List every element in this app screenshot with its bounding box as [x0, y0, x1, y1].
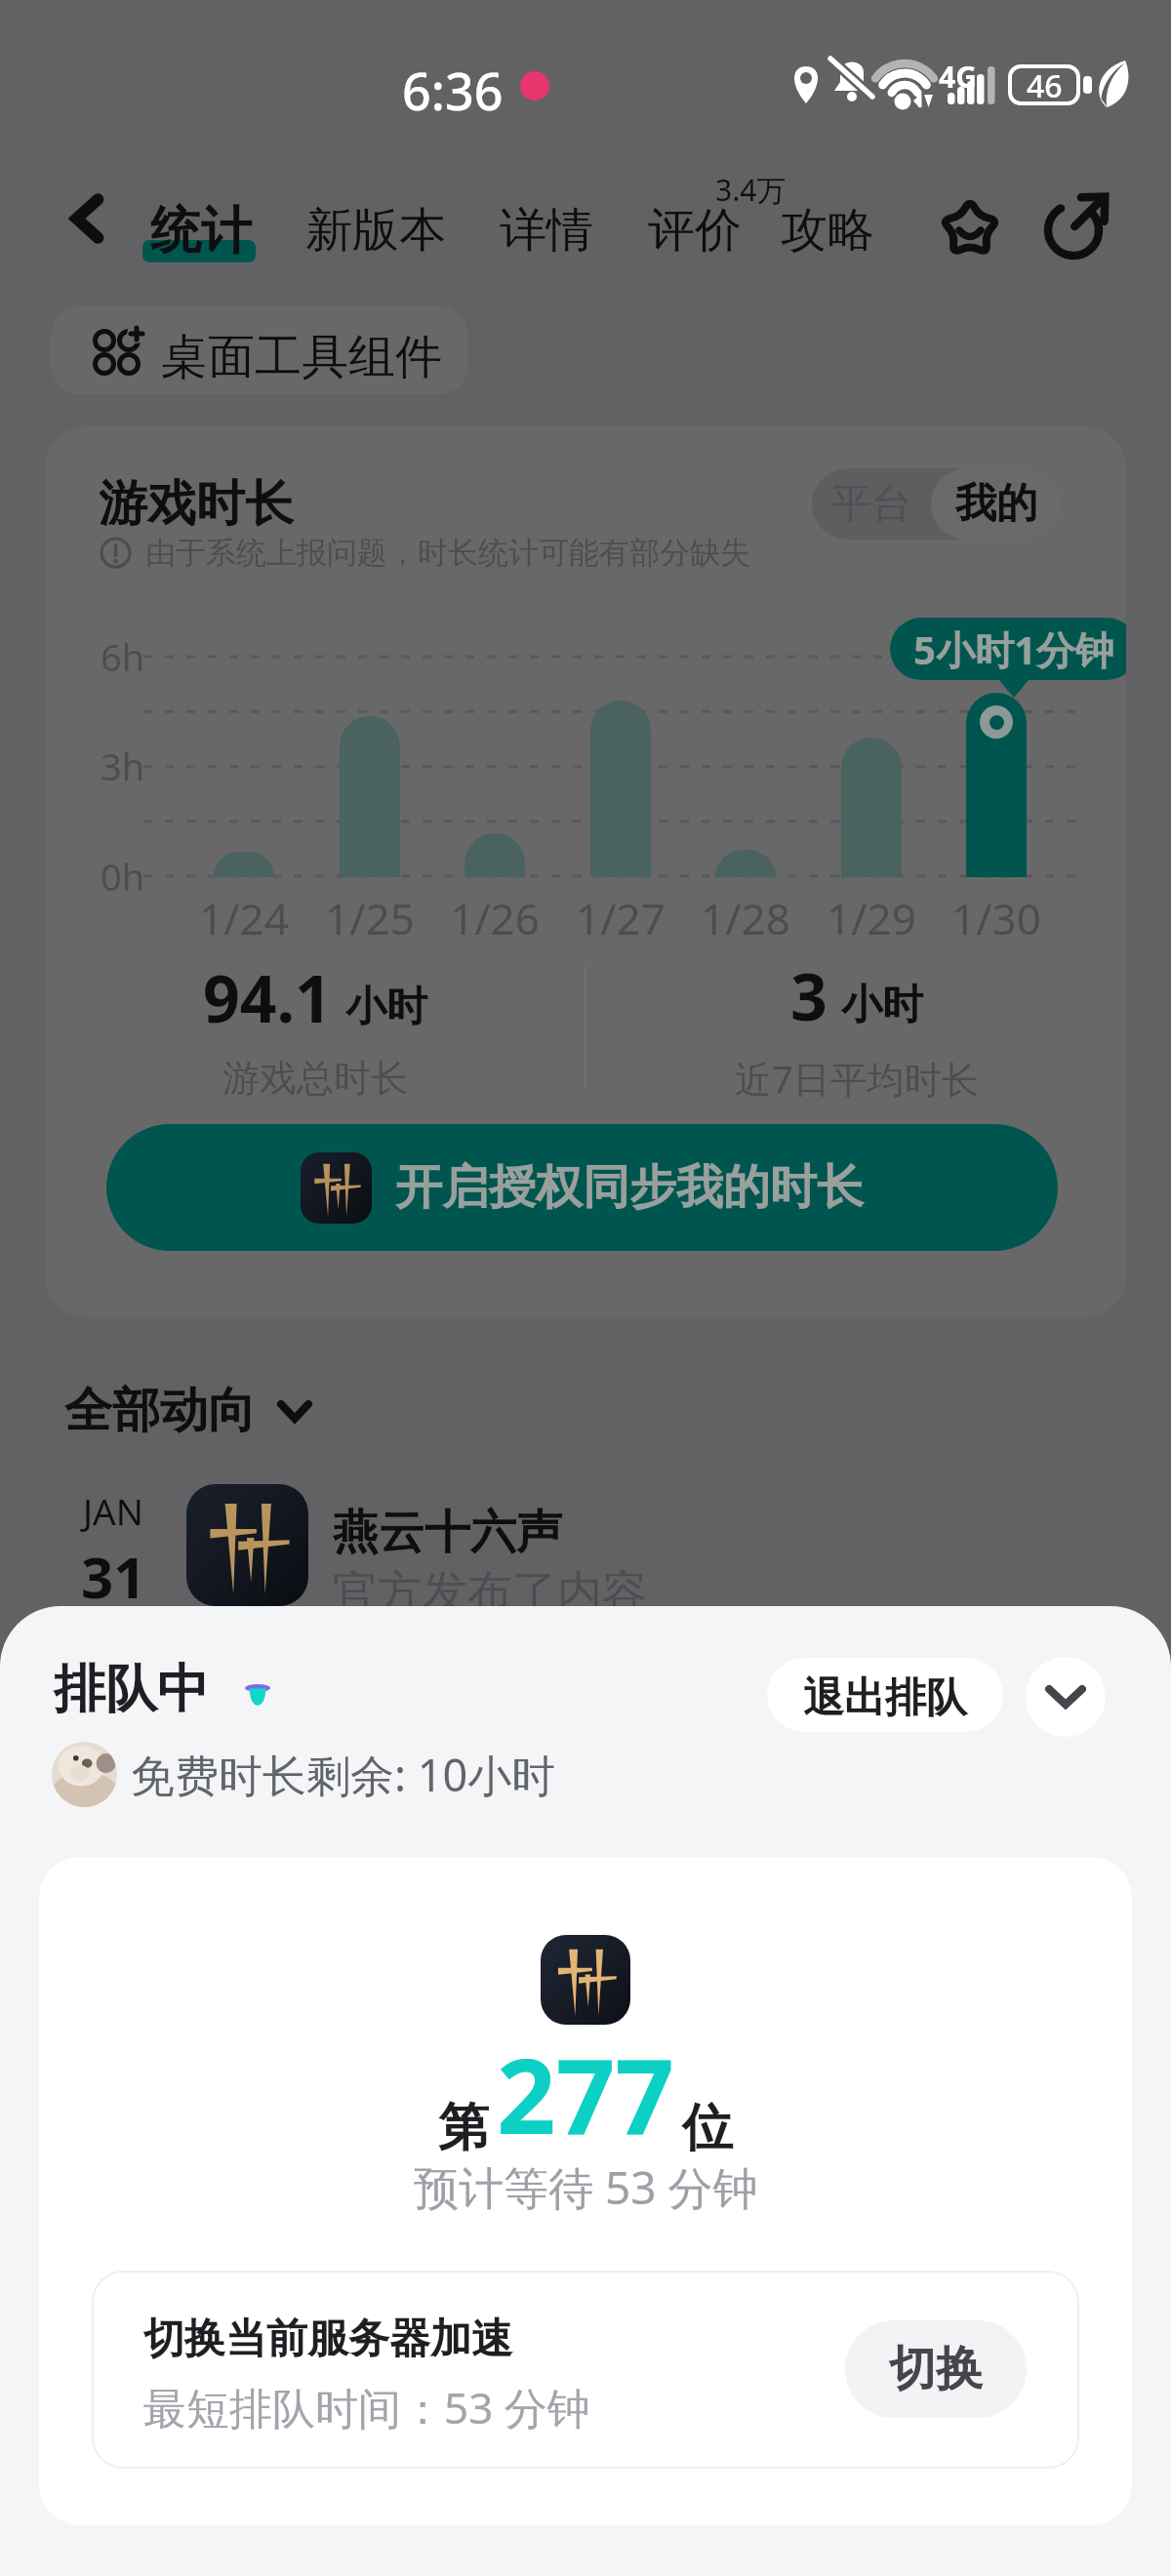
- button[interactable]: JAN: [0, 1484, 1171, 1611]
- staticText: 免费时长剩余: 10小时: [131, 1745, 556, 1804]
- button[interactable]: 评价: [648, 201, 742, 260]
- button[interactable]: Share: [1038, 191, 1109, 262]
- staticText: 小时: [841, 980, 923, 1031]
- staticText: 1/25: [325, 889, 415, 947]
- button[interactable]: Favorite: [935, 192, 1005, 262]
- staticText: 最短排队时间：53 分钟: [143, 2378, 590, 2436]
- staticText: 46: [1027, 64, 1063, 105]
- staticText: 31: [81, 1538, 146, 1615]
- staticText: 6:36: [402, 56, 504, 125]
- staticText: JAN: [83, 1486, 143, 1535]
- staticText: 6h: [101, 631, 145, 682]
- staticText: 游戏总时长: [222, 1055, 408, 1102]
- button[interactable]: 切换当前服务器加速: [92, 2271, 1079, 2469]
- button[interactable]: 退出排队: [767, 1658, 1003, 1732]
- staticText: 桌面工具组件: [161, 328, 442, 386]
- staticText: 5小时1分钟: [913, 623, 1114, 676]
- staticText: 由于系统上报问题，时长统计可能有部分缺失: [145, 534, 750, 572]
- staticText: 1/26: [450, 889, 540, 947]
- staticText: 官方发布了内容: [333, 1564, 647, 1621]
- staticText: 1/30: [951, 889, 1041, 947]
- staticText: 我的: [955, 478, 1037, 530]
- staticText: 游戏时长: [99, 473, 294, 535]
- staticText: 1/28: [701, 889, 790, 947]
- staticText: 开启授权同步我的时长: [395, 1158, 864, 1217]
- button[interactable]: 详情: [500, 201, 593, 260]
- staticText: 1/27: [576, 889, 666, 947]
- staticText: 第: [438, 2096, 489, 2160]
- staticText: 预计等待 53 分钟: [414, 2156, 758, 2218]
- staticText: 切换当前服务器加速: [143, 2314, 512, 2365]
- button[interactable]: 开启授权同步我的时长: [106, 1124, 1058, 1251]
- button[interactable]: 全部动向: [64, 1381, 312, 1441]
- button[interactable]: 攻略: [781, 201, 874, 260]
- staticText: 3h: [101, 741, 145, 791]
- button[interactable]: 我的: [931, 468, 1062, 540]
- staticText: 切换: [889, 2340, 983, 2398]
- button[interactable]: 统计: [150, 199, 252, 263]
- staticText: 0h: [101, 851, 145, 902]
- button[interactable]: 桌面工具组件: [51, 306, 468, 394]
- button[interactable]: Collapse: [1026, 1657, 1106, 1737]
- staticText: 1/29: [827, 889, 916, 947]
- staticText: 3: [790, 951, 828, 1039]
- staticText: 3.4万: [715, 170, 787, 210]
- staticText: 近7日平均时长: [735, 1053, 979, 1104]
- staticText: 全部动向: [64, 1381, 256, 1441]
- button[interactable]: Back: [58, 187, 120, 250]
- staticText: 位: [682, 2096, 733, 2160]
- button[interactable]: 平台: [812, 468, 931, 540]
- staticText: 4G: [939, 57, 977, 97]
- staticText: 小时: [345, 982, 427, 1033]
- staticText: 退出排队: [803, 1672, 967, 1724]
- staticText: 燕云十六声: [333, 1504, 562, 1561]
- staticText: 1/24: [199, 889, 289, 947]
- button[interactable]: 切换: [845, 2320, 1027, 2418]
- staticText: 277: [497, 2024, 674, 2164]
- staticText: 94.1: [203, 953, 332, 1041]
- staticText: 排队中: [54, 1657, 209, 1722]
- button[interactable]: 新版本: [305, 201, 446, 260]
- staticText: 平台: [830, 478, 912, 530]
